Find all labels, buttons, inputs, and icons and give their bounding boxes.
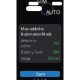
- staticText: Yes: [53, 40, 59, 46]
- staticText: SIM: [37, 0, 47, 5]
- staticText: Open: [35, 71, 44, 77]
- button[interactable]: Open: [20, 71, 60, 77]
- staticText: 78%: [52, 49, 59, 55]
- staticText: Range: [20, 56, 30, 61]
- staticText: 214 mi: [47, 56, 59, 61]
- staticText: AUTO: [46, 8, 60, 16]
- staticText: Vehicle is online: [20, 38, 36, 48]
- staticText: Max added to Automation Mode: [20, 26, 51, 37]
- staticText: Battery level: [20, 49, 42, 55]
